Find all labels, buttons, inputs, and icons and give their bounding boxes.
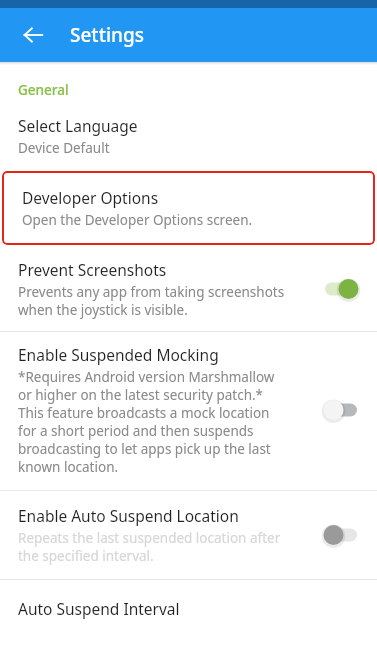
button[interactable]: Prevent Screenshots	[0, 249, 377, 331]
staticText: Select Language	[18, 115, 138, 136]
staticText: Prevent Screenshots	[18, 259, 167, 280]
button[interactable]: Auto Suspend Interval	[0, 580, 377, 633]
staticText: Prevents any app from taking screenshots…	[18, 283, 285, 319]
button[interactable]: Enable Suspended Mocking toggle, off	[315, 394, 367, 426]
button[interactable]: Enable Suspended Mocking	[0, 332, 377, 490]
staticText: Settings	[70, 22, 144, 48]
staticText: Open the Developer Options screen.	[22, 211, 253, 229]
staticText: Enable Auto Suspend Location	[18, 505, 239, 526]
button[interactable]: Developer Options	[4, 173, 373, 243]
staticText: Developer Options	[22, 187, 159, 208]
button[interactable]: Enable Auto Suspend Location toggle, off	[315, 519, 367, 551]
button[interactable]: Enable Auto Suspend Location	[0, 491, 377, 579]
button[interactable]: Back	[10, 12, 56, 58]
button[interactable]: Select Language	[0, 115, 377, 171]
staticText: Enable Suspended Mocking	[18, 344, 219, 365]
staticText: General	[18, 81, 69, 99]
staticText: Device Default	[18, 139, 110, 157]
staticText: Repeats the last suspended location afte…	[18, 529, 281, 565]
staticText: Auto Suspend Interval	[18, 598, 180, 619]
button[interactable]: Prevent Screenshots toggle, on	[315, 273, 367, 305]
staticText: *Requires Android version Marshmallow or…	[18, 368, 275, 476]
